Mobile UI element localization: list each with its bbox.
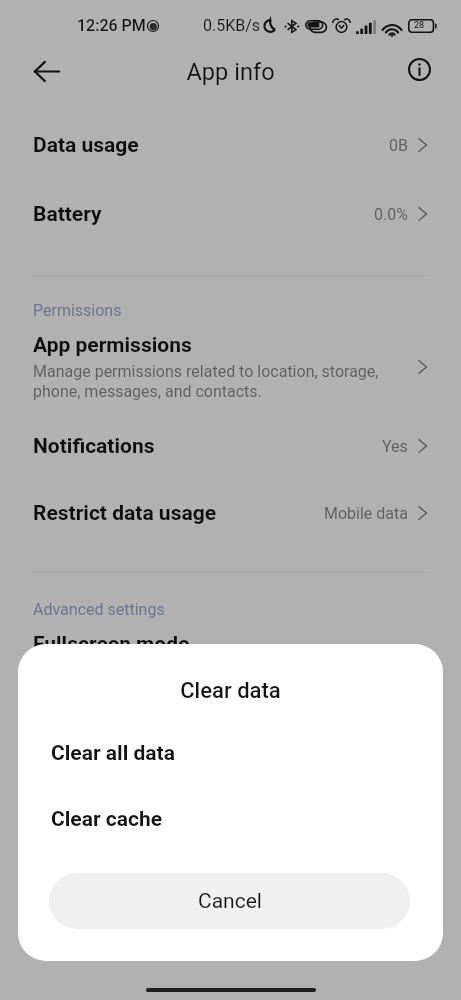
staticText: App info: [0, 58, 461, 86]
button[interactable]: Battery: [0, 180, 461, 248]
staticText: 0B: [389, 136, 408, 155]
staticText: Advanced settings: [33, 600, 165, 619]
button[interactable]: App details: [397, 47, 441, 91]
button[interactable]: Back: [22, 47, 70, 95]
staticText: Notifications: [33, 434, 382, 459]
button[interactable]: Cancel: [49, 873, 410, 929]
button[interactable]: Restrict data usage: [0, 479, 461, 547]
staticText: 28: [414, 20, 425, 31]
staticText: Clear cache: [51, 807, 163, 832]
staticText: 12:26 PM: [77, 16, 146, 35]
staticText: Fullscreen mode: [33, 632, 190, 657]
staticText: Manage permissions related to location, …: [33, 362, 379, 401]
staticText: Battery: [33, 202, 374, 227]
staticText: Permissions: [33, 301, 122, 320]
button[interactable]: Clear all data: [18, 720, 443, 786]
staticText: Data usage: [33, 133, 389, 158]
button[interactable]: Notifications: [0, 412, 461, 480]
staticText: 0.0%: [374, 205, 408, 224]
staticText: 0.5KB/s: [203, 16, 261, 35]
staticText: Clear all data: [51, 741, 175, 766]
staticText: Mobile data: [324, 504, 408, 523]
staticText: Clear data: [18, 678, 443, 704]
staticText: Cancel: [198, 889, 262, 914]
staticText: App permissions: [33, 333, 192, 358]
staticText: Yes: [382, 437, 408, 456]
button[interactable]: Data usage: [0, 111, 461, 179]
staticText: Restrict data usage: [33, 501, 324, 526]
button[interactable]: Clear cache: [18, 786, 443, 852]
button[interactable]: App permissions: [0, 324, 461, 410]
button[interactable]: Fullscreen mode: [0, 624, 461, 664]
